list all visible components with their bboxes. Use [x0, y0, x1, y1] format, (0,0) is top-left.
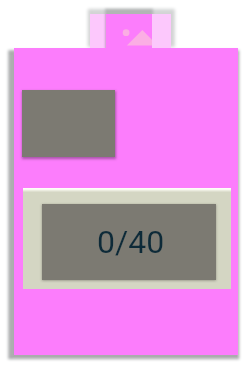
staticText: 0/40 [97, 223, 165, 261]
other: Image [106, 14, 152, 48]
button[interactable]: Image placeholder [14, 48, 238, 355]
button[interactable]: Image [90, 14, 171, 48]
button[interactable]: 0/40 [23, 188, 231, 289]
